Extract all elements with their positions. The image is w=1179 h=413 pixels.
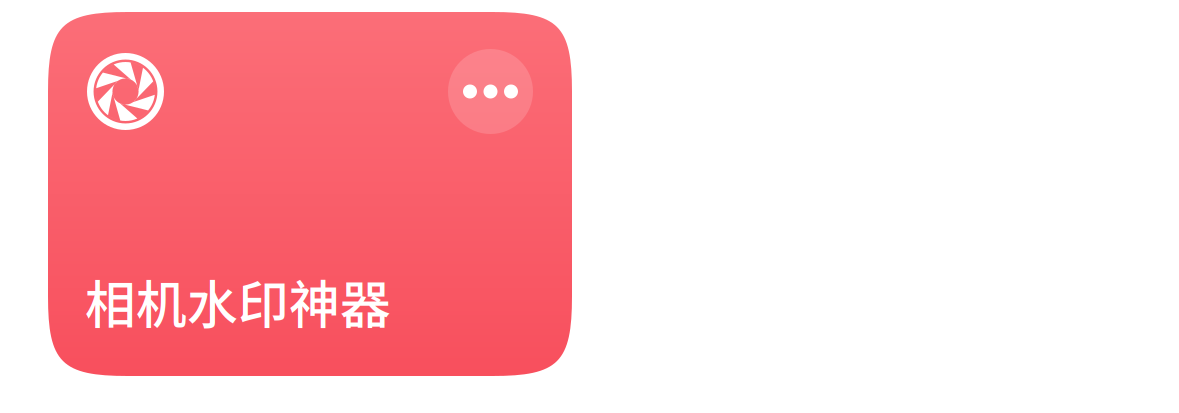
staticText: 相机水印神器 bbox=[85, 265, 391, 338]
button[interactable]: More options bbox=[448, 49, 533, 134]
